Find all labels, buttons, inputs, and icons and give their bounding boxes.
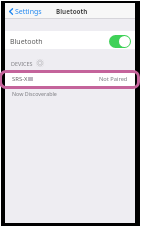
button[interactable]: SRS-X [5, 70, 135, 89]
button[interactable]: Settings [5, 3, 46, 18]
staticText: DEVICES [11, 60, 33, 67]
staticText: Bluetooth [56, 7, 88, 16]
staticText: SRS-X [12, 75, 28, 83]
staticText: Not Paired [99, 75, 128, 83]
staticText: Settings [15, 7, 42, 17]
button[interactable]: Bluetooth toggle [109, 35, 131, 48]
staticText: Now Discoverable [12, 90, 57, 97]
button[interactable]: Bluetooth [5, 31, 135, 49]
staticText: Bluetooth [10, 37, 43, 47]
